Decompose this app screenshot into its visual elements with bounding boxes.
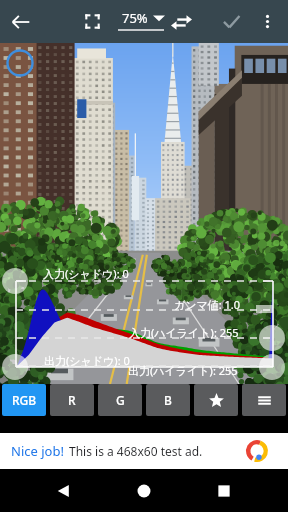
button[interactable]: Back [8, 9, 34, 35]
staticText: 入力(シャドウ): 0 [43, 266, 129, 281]
button[interactable]: B [146, 384, 190, 416]
staticText: 出力(ハイライト): 255 [128, 363, 238, 378]
button[interactable]: Menu [242, 384, 286, 416]
button[interactable]: Recent apps [212, 479, 236, 503]
button[interactable]: Fit to screen [83, 12, 102, 31]
button[interactable]: RGB [2, 384, 46, 416]
staticText: This is a 468x60 test ad. [69, 443, 203, 459]
button[interactable]: Compare before after [171, 12, 192, 33]
button[interactable]: More options [257, 11, 278, 32]
staticText: 入力(ハイライト): 255 [129, 325, 239, 340]
button[interactable]: Back [52, 479, 76, 503]
staticText: Nice job! [11, 442, 64, 460]
staticText: RGB [12, 392, 37, 408]
staticText: ガンマ値: 1.0 [174, 297, 241, 312]
button[interactable]: Favorites [194, 384, 238, 416]
button[interactable]: G [98, 384, 142, 416]
staticText: G [116, 392, 125, 408]
staticText: 75% [122, 9, 148, 27]
button[interactable]: 75% [122, 7, 166, 29]
staticText: 出力(シャドウ): 0 [44, 353, 130, 368]
button[interactable]: Home [132, 479, 156, 503]
button[interactable]: Apply [221, 11, 242, 32]
staticText: B [164, 392, 172, 408]
button[interactable]: R [50, 384, 94, 416]
staticText: R [68, 392, 76, 408]
